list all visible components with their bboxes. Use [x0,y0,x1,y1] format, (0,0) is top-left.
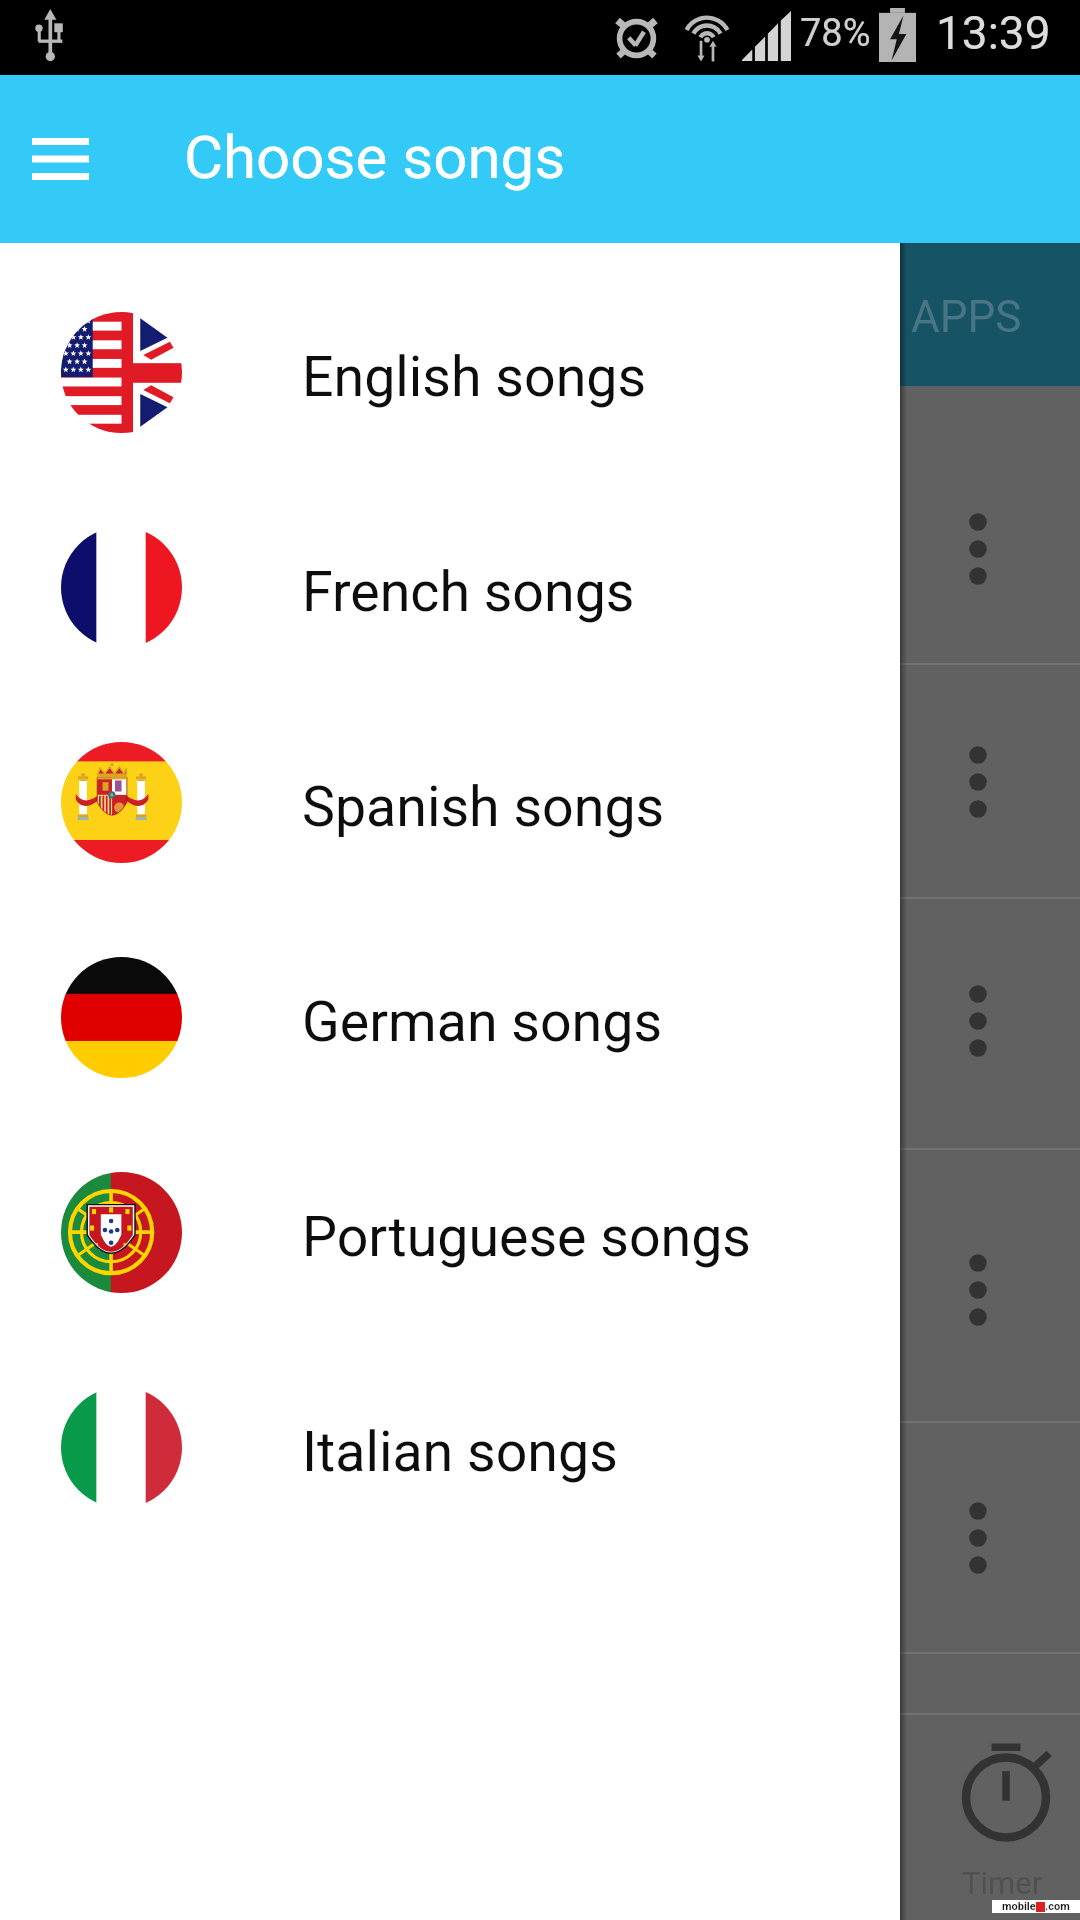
button[interactable]: Open navigation drawer [4,99,116,219]
staticText: .com [1045,1900,1070,1913]
button[interactable]: APPS [900,243,1080,386]
staticText: German songs [302,990,663,1055]
staticText: mobile [1002,1900,1036,1913]
staticText: 13:39 [936,6,1051,60]
button[interactable]: Portuguese songs [0,1125,1080,1340]
button[interactable]: More options [960,1483,1020,1593]
button[interactable]: English songs [0,265,1080,480]
button[interactable]: More options [960,1235,1020,1345]
staticText: Italian songs [302,1420,618,1485]
staticText: Choose songs [184,122,566,192]
staticText: APPS [911,291,1022,343]
staticText: Timer [962,1865,1043,1901]
button[interactable]: Spanish songs [0,695,1080,910]
button[interactable]: Italian songs [0,1340,1080,1555]
staticText: Spanish songs [302,775,665,840]
button[interactable]: More options [960,494,1020,604]
staticText: 78% [800,11,871,56]
button[interactable]: More options [960,727,1020,837]
staticText: French songs [302,560,635,625]
staticText: Portuguese songs [302,1205,752,1270]
button[interactable]: French songs [0,480,1080,695]
staticText: English songs [302,345,647,410]
button[interactable]: More options [960,966,1020,1076]
button[interactable]: German songs [0,910,1080,1125]
button[interactable]: Timer [900,1713,1080,1920]
